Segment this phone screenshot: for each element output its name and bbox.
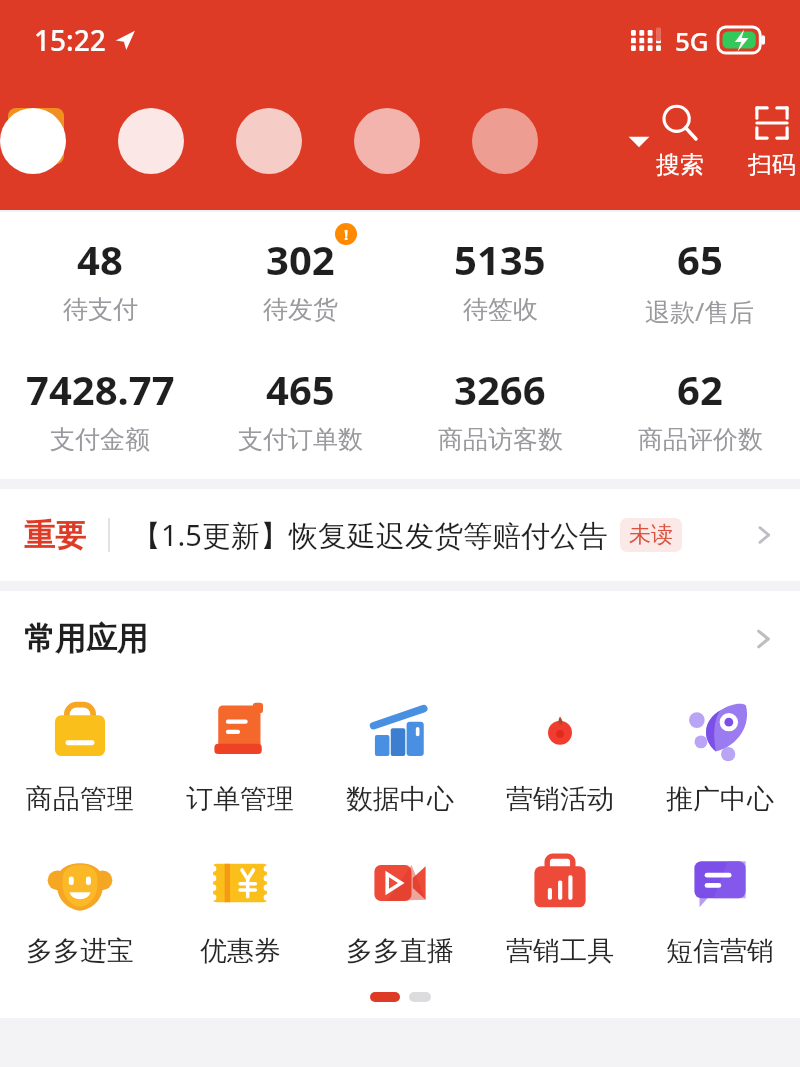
staticText: 7428.77 <box>26 362 175 416</box>
button[interactable]: 7428.77 <box>0 360 200 457</box>
staticText: 订单管理 <box>186 782 294 816</box>
staticText: 5G <box>675 23 709 58</box>
staticText: 支付金额 <box>50 424 150 455</box>
staticText: 重要 <box>24 516 86 555</box>
staticText: 短信营销 <box>666 934 774 968</box>
staticText: 待支付 <box>63 294 138 325</box>
staticText: 营销工具 <box>506 934 614 968</box>
button[interactable]: 65 <box>600 230 800 330</box>
staticText: 优惠券 <box>200 934 281 968</box>
staticText: 62 <box>677 362 723 416</box>
button[interactable]: 订单管理 <box>160 690 320 818</box>
button[interactable]: 465 <box>200 360 400 457</box>
button[interactable]: 数据中心 <box>320 690 480 818</box>
staticText: 扫码 <box>748 150 796 180</box>
staticText: 推广中心 <box>666 782 774 816</box>
staticText: 支付订单数 <box>238 424 363 455</box>
staticText: 5135 <box>454 232 546 286</box>
button[interactable]: 推广中心 <box>640 690 800 818</box>
button[interactable]: 多多直播 <box>320 842 480 970</box>
button[interactable]: 搜索 <box>652 100 708 182</box>
staticText: 15:22 <box>34 21 106 59</box>
staticText: 数据中心 <box>346 782 454 816</box>
staticText: 退款/售后 <box>645 294 755 328</box>
staticText: 常用应用 <box>24 619 148 658</box>
staticText: 未读 <box>629 521 673 549</box>
staticText: 465 <box>266 362 335 416</box>
button[interactable]: 多多进宝 <box>0 842 160 970</box>
staticText: 65 <box>677 232 723 286</box>
button[interactable]: 扫码 <box>744 100 800 182</box>
button[interactable]: 302 <box>200 230 400 327</box>
button[interactable]: 营销活动 <box>480 690 640 818</box>
button[interactable]: 营销工具 <box>480 842 640 970</box>
staticText: 待签收 <box>463 294 538 325</box>
staticText: 48 <box>77 232 123 286</box>
staticText: 302 <box>266 232 335 286</box>
staticText: 搜索 <box>656 150 704 180</box>
button[interactable]: 优惠券 <box>160 842 320 970</box>
button[interactable]: 62 <box>600 360 800 457</box>
staticText: 待发货 <box>263 294 338 325</box>
staticText: ! <box>344 224 349 244</box>
staticText: 多多直播 <box>346 934 454 968</box>
button[interactable]: 商品管理 <box>0 690 160 818</box>
button[interactable]: 48 <box>0 230 200 327</box>
staticText: 【1.5更新】恢复延迟发货等赔付公告 <box>132 515 608 555</box>
staticText: 3266 <box>454 362 546 416</box>
staticText: 商品评价数 <box>638 424 763 455</box>
staticText: 商品管理 <box>26 782 134 816</box>
button[interactable]: 常用应用 <box>0 591 800 668</box>
button[interactable]: 短信营销 <box>640 842 800 970</box>
button[interactable]: 3266 <box>400 360 600 457</box>
staticText: 商品访客数 <box>438 424 563 455</box>
staticText: 营销活动 <box>506 782 614 816</box>
button[interactable]: 重要 <box>0 489 800 581</box>
staticText: 多多进宝 <box>26 934 134 968</box>
button[interactable]: 5135 <box>400 230 600 327</box>
